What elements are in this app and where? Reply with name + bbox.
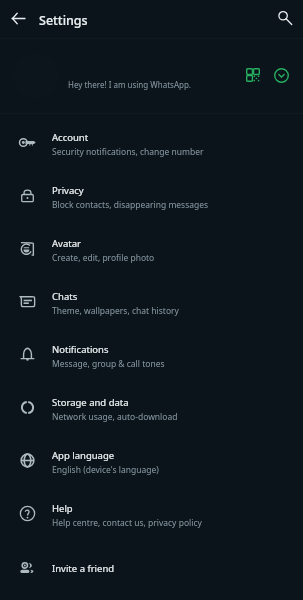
staticText: English (device's language) [52, 464, 159, 476]
button[interactable]: Account [0, 118, 303, 171]
button[interactable]: Avatar [0, 224, 303, 277]
button[interactable]: Invite a friend [0, 542, 303, 595]
staticText: Message, group & call tones [52, 358, 165, 370]
staticText: Create, edit, profile photo [52, 252, 155, 264]
staticText: Notifications [52, 343, 109, 356]
button[interactable]: Help [0, 489, 303, 542]
button[interactable]: Storage and data [0, 383, 303, 436]
button[interactable]: Search [272, 5, 298, 31]
button[interactable]: Chats [0, 277, 303, 330]
staticText: Theme, wallpapers, chat history [52, 305, 179, 317]
staticText: Chats [52, 290, 78, 303]
staticText: Invite a friend [52, 562, 115, 575]
button[interactable]: QR code [240, 62, 266, 88]
staticText: Network usage, auto-download [52, 411, 178, 423]
button[interactable]: Hey there! I am using WhatsApp. [0, 39, 303, 113]
staticText: Account [52, 131, 89, 144]
staticText: Privacy [52, 184, 84, 197]
button[interactable]: Notifications [0, 330, 303, 383]
button[interactable]: Expand profile [268, 62, 294, 88]
button[interactable]: Privacy [0, 171, 303, 224]
staticText: App language [52, 449, 115, 462]
button[interactable]: App language [0, 436, 303, 489]
staticText: Settings [39, 12, 88, 29]
staticText: Help [52, 502, 73, 515]
staticText: Storage and data [52, 396, 129, 409]
staticText: Avatar [52, 237, 81, 250]
staticText: Block contacts, disappearing messages [52, 199, 209, 211]
staticText: Help centre, contact us, privacy policy [52, 517, 202, 529]
staticText: Security notifications, change number [52, 146, 204, 158]
staticText: Hey there! I am using WhatsApp. [68, 79, 191, 90]
button[interactable]: Back [6, 6, 31, 31]
